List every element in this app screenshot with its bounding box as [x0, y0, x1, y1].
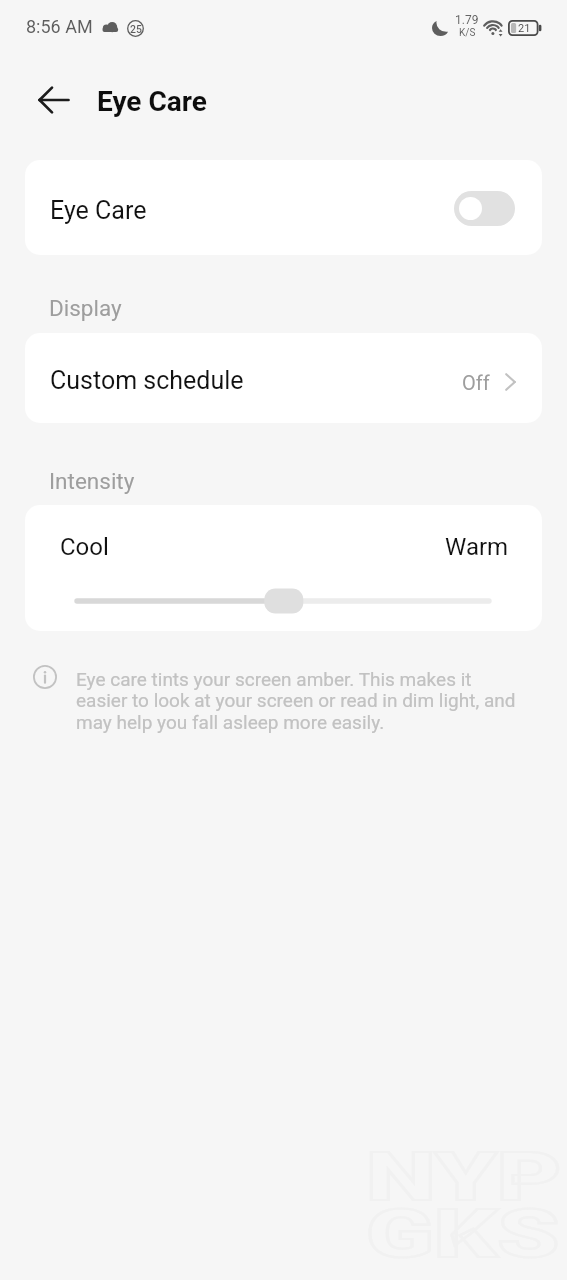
staticText: Eye Care	[50, 196, 147, 225]
button[interactable]: Eye Care switch	[454, 191, 515, 226]
staticText: 21	[518, 22, 531, 35]
staticText: 1.79	[455, 13, 479, 27]
staticText: Warm	[445, 533, 509, 561]
staticText: 8:56 AM	[26, 16, 93, 37]
staticText: Display	[49, 295, 122, 321]
button[interactable]: Custom schedule	[25, 333, 542, 423]
staticText: 25	[130, 23, 142, 35]
staticText: Custom schedule	[50, 366, 244, 395]
button[interactable]: Back	[30, 76, 78, 124]
staticText: Eye Care	[97, 85, 207, 118]
staticText: Cool	[60, 533, 109, 561]
staticText: Off	[462, 371, 490, 394]
button[interactable]: Eye Care	[25, 160, 542, 255]
button[interactable]: Intensity slider	[25, 586, 542, 616]
staticText: Intensity	[49, 468, 135, 494]
staticText: K/S	[459, 27, 476, 39]
staticText: Eye care tints your screen amber. This m…	[76, 668, 524, 734]
